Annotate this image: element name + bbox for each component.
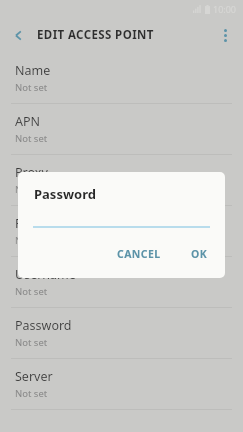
staticText: Password bbox=[34, 185, 96, 203]
staticText: Not set bbox=[15, 81, 48, 94]
button[interactable]: Password bbox=[0, 308, 243, 358]
staticText: CANCEL bbox=[117, 247, 161, 261]
button[interactable]: Username bbox=[0, 257, 243, 307]
staticText: EDIT ACCESS POINT bbox=[37, 27, 154, 43]
staticText: Proxy bbox=[15, 164, 48, 181]
button[interactable]: Navigate up bbox=[6, 22, 32, 48]
staticText: APN bbox=[15, 113, 41, 130]
staticText: Not set bbox=[15, 336, 48, 349]
button[interactable]: More options bbox=[212, 22, 238, 48]
staticText: Server bbox=[15, 368, 53, 385]
staticText: Not set bbox=[15, 132, 48, 145]
staticText: Not set bbox=[15, 183, 48, 196]
button[interactable]: Server bbox=[0, 359, 243, 409]
button[interactable]: Proxy bbox=[0, 155, 243, 205]
staticText: OK bbox=[191, 247, 208, 261]
staticText: Username bbox=[15, 266, 76, 283]
staticText: Port bbox=[15, 215, 40, 232]
staticText: Not set bbox=[15, 234, 48, 247]
button[interactable]: OK bbox=[182, 242, 217, 266]
staticText: Name bbox=[15, 62, 51, 79]
button[interactable]: Port bbox=[0, 206, 243, 256]
button[interactable]: CANCEL bbox=[108, 242, 170, 266]
staticText: Not set bbox=[15, 387, 48, 400]
staticText: Not set bbox=[15, 285, 48, 298]
staticText: 10:00 bbox=[213, 3, 237, 15]
staticText: Password bbox=[15, 317, 72, 334]
button[interactable]: APN bbox=[0, 104, 243, 154]
button[interactable]: Name bbox=[0, 53, 243, 103]
